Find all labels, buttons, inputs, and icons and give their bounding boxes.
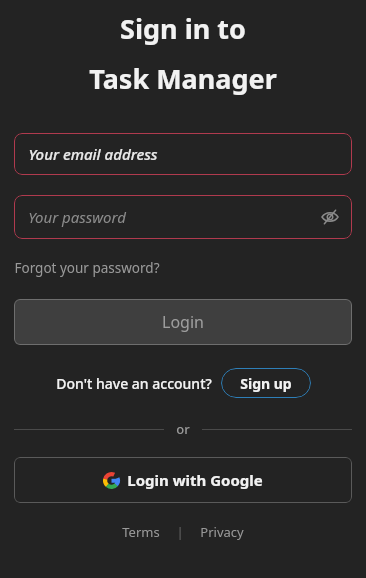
staticText: Don't have an account? — [56, 374, 212, 393]
button[interactable]: Sign up — [221, 368, 311, 398]
staticText: Login with Google — [127, 470, 263, 490]
staticText: Login — [162, 311, 204, 333]
staticText: Sign up — [240, 374, 292, 393]
staticText: or — [176, 420, 190, 438]
button[interactable]: Your email address — [14, 133, 352, 175]
staticText: Task Manager — [89, 60, 277, 97]
button[interactable]: Terms — [118, 523, 164, 541]
staticText: Your email address — [28, 144, 158, 164]
button[interactable]: Your password — [14, 195, 352, 239]
button[interactable]: Login with Google — [14, 457, 352, 503]
button[interactable]: Show password — [319, 206, 341, 228]
button[interactable]: Login — [14, 299, 352, 345]
staticText: Sign in to — [120, 10, 246, 47]
button[interactable]: Privacy — [196, 523, 248, 541]
button[interactable]: Forgot your password? — [14, 259, 160, 277]
staticText: Privacy — [200, 523, 244, 541]
staticText: Your password — [28, 207, 126, 227]
staticText: Forgot your password? — [14, 259, 160, 277]
staticText: Terms — [122, 523, 160, 541]
staticText: | — [176, 523, 184, 541]
